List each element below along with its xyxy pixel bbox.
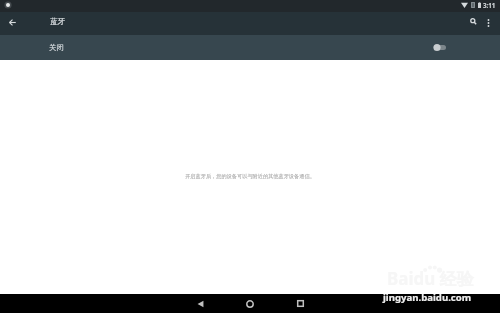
staticText: 蓝牙	[50, 17, 66, 27]
button[interactable]: Home	[225, 294, 275, 313]
staticText: Baidu 经验	[387, 267, 474, 290]
button[interactable]: Navigate up	[0, 12, 26, 35]
staticText: jingyan.baidu.com	[383, 291, 472, 304]
button[interactable]: Search	[464, 12, 482, 35]
button[interactable]: More options	[481, 12, 496, 35]
button[interactable]: Bluetooth on/off	[431, 40, 448, 55]
button[interactable]: 关闭	[0, 35, 500, 60]
staticText: 开启蓝牙后，您的设备可以与附近的其他蓝牙设备通信。	[185, 173, 315, 180]
button[interactable]: Back	[175, 294, 225, 313]
staticText: 关闭	[49, 43, 64, 52]
staticText: 3:11	[483, 1, 496, 9]
button[interactable]: Recent apps	[275, 294, 325, 313]
